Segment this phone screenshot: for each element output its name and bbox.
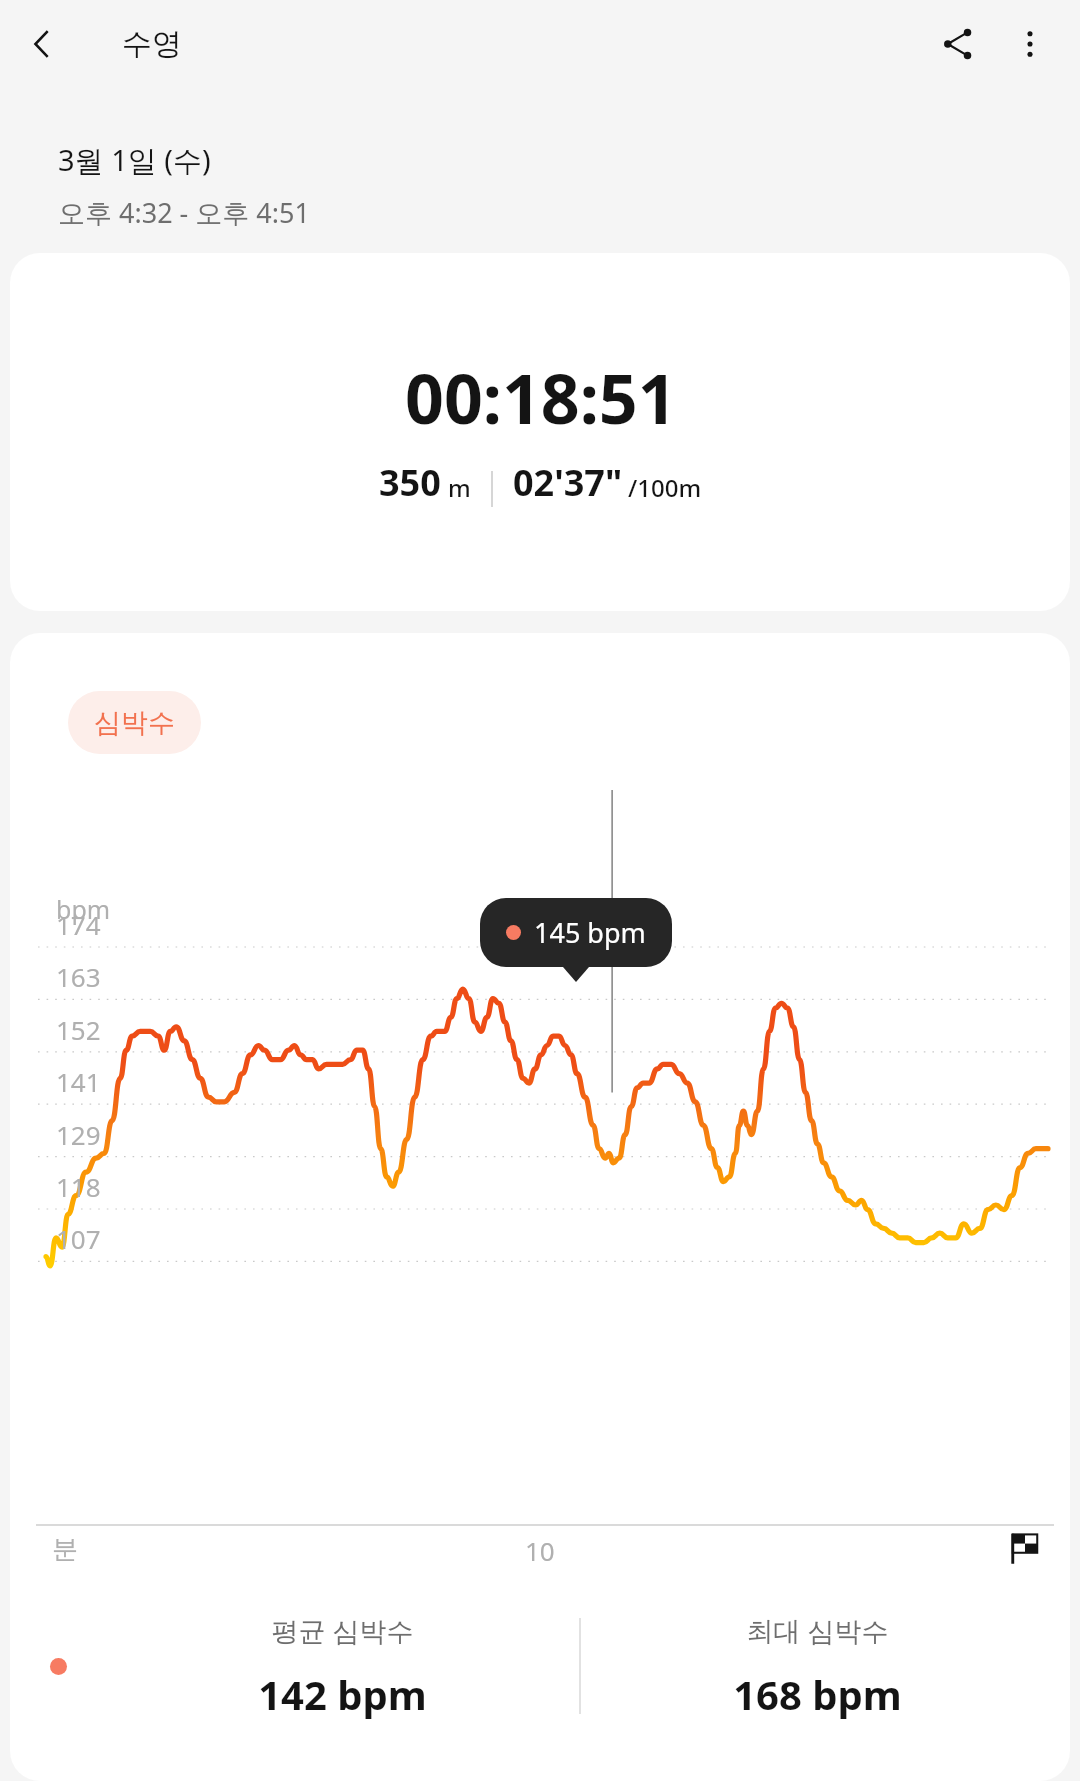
staticText: 최대 심박수	[746, 1612, 889, 1649]
button[interactable]: Share	[922, 8, 994, 80]
staticText: 141	[56, 1064, 101, 1099]
staticText: 163	[56, 959, 101, 994]
staticText: 3월 1일 (수)	[58, 140, 211, 180]
staticText: 107	[56, 1221, 101, 1256]
staticText: 오후 4:32 - 오후 4:51	[58, 194, 310, 231]
staticText: 174	[56, 907, 101, 942]
staticText: /100m	[628, 471, 702, 504]
staticText: m	[448, 471, 471, 504]
button[interactable]: Back	[10, 12, 74, 76]
staticText: 152	[56, 1012, 101, 1047]
staticText: 02'37"	[513, 458, 623, 507]
staticText: bpm	[56, 892, 111, 926]
button[interactable]: More options	[994, 8, 1066, 80]
staticText: 수영	[122, 25, 182, 63]
button[interactable]: 심박수	[68, 691, 201, 754]
staticText: 129	[56, 1117, 101, 1152]
button[interactable]: 최대 심박수	[581, 1612, 1054, 1721]
button[interactable]: 평균 심박수	[106, 1612, 579, 1721]
button[interactable]: 145 bpm	[480, 898, 672, 967]
staticText: 145 bpm	[534, 914, 646, 951]
staticText: 00:18:51	[405, 351, 677, 444]
staticText: 350	[379, 458, 441, 507]
staticText: 심박수	[94, 706, 175, 740]
staticText: 10	[525, 1533, 555, 1568]
staticText: 168 bpm	[733, 1667, 902, 1721]
staticText: 분	[52, 1533, 78, 1566]
staticText: 142 bpm	[258, 1667, 427, 1721]
staticText: 118	[56, 1169, 101, 1204]
staticText: 평균 심박수	[271, 1612, 414, 1649]
button[interactable]: 00:18:51	[10, 253, 1070, 611]
other: Finish	[1008, 1531, 1042, 1565]
